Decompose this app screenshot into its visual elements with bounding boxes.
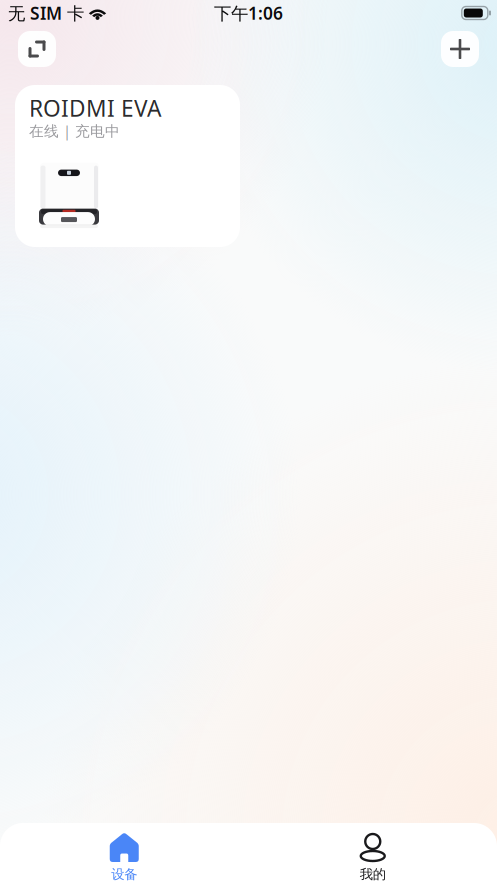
button[interactable]: ROIDMI EVA xyxy=(15,85,240,247)
button[interactable]: 我的 xyxy=(248,823,497,883)
staticText: 在线 | 充电中 xyxy=(29,121,120,141)
staticText: 下午1:06 xyxy=(214,1,283,24)
staticText: 无 SIM 卡 xyxy=(8,1,84,24)
staticText: 我的 xyxy=(360,866,386,882)
button[interactable]: Expand xyxy=(18,31,56,67)
button[interactable]: Add device xyxy=(441,31,479,67)
staticText: 设备 xyxy=(111,866,137,882)
button[interactable]: 设备 xyxy=(0,823,248,883)
staticText: ROIDMI EVA xyxy=(29,93,161,123)
